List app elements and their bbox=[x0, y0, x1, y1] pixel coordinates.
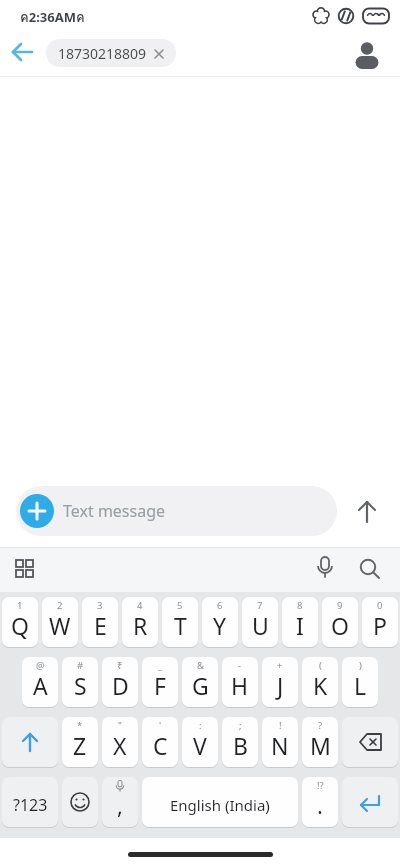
staticText: A bbox=[33, 670, 48, 701]
staticText: 2 bbox=[57, 599, 63, 612]
staticText: R bbox=[133, 610, 148, 641]
staticText: B bbox=[233, 730, 248, 761]
staticText: I bbox=[296, 610, 304, 641]
staticText: ) bbox=[359, 659, 362, 672]
staticText: English (India) bbox=[170, 795, 270, 815]
staticText: X bbox=[113, 730, 127, 761]
staticText: 6 bbox=[217, 599, 223, 612]
staticText: W bbox=[49, 610, 71, 641]
staticText: ' bbox=[159, 719, 162, 732]
staticText: 18730218809 bbox=[58, 44, 147, 63]
staticText: - bbox=[238, 659, 242, 672]
staticText: 7 bbox=[257, 599, 263, 612]
staticText: Y bbox=[213, 610, 227, 641]
staticText: * bbox=[77, 719, 83, 732]
staticText: 0 bbox=[377, 599, 383, 612]
staticText: & bbox=[197, 659, 204, 672]
staticText: !? bbox=[317, 779, 324, 792]
staticText: ?123 bbox=[13, 794, 48, 816]
staticText: , bbox=[117, 790, 123, 820]
staticText: S bbox=[74, 670, 87, 701]
staticText: # bbox=[77, 659, 84, 672]
staticText: ( bbox=[319, 659, 322, 672]
staticText: Text message bbox=[63, 500, 166, 522]
staticText: @ bbox=[36, 659, 45, 672]
staticText: L bbox=[354, 670, 367, 701]
staticText: F bbox=[154, 670, 166, 701]
staticText: Q bbox=[11, 610, 29, 641]
staticText: U bbox=[252, 610, 269, 641]
staticText: N bbox=[271, 730, 289, 761]
staticText: _ bbox=[158, 659, 163, 672]
staticText: O bbox=[331, 610, 349, 641]
staticText: C bbox=[153, 730, 168, 761]
staticText: ค2:36AMค bbox=[20, 7, 85, 28]
staticText: J bbox=[277, 670, 284, 701]
staticText: K bbox=[313, 670, 328, 701]
staticText: . bbox=[317, 790, 323, 820]
staticText: 5 bbox=[177, 599, 183, 612]
staticText: Z bbox=[73, 730, 87, 761]
staticText: 3 bbox=[97, 599, 103, 612]
staticText: ? bbox=[318, 719, 323, 732]
staticText: H bbox=[231, 670, 249, 701]
staticText: T bbox=[174, 610, 187, 641]
staticText: G bbox=[192, 670, 209, 701]
staticText: M bbox=[310, 730, 331, 761]
staticText: 9 bbox=[337, 599, 343, 612]
staticText: : bbox=[199, 719, 202, 732]
staticText: 1 bbox=[17, 599, 23, 612]
staticText: 8 bbox=[297, 599, 303, 612]
staticText: E bbox=[94, 610, 107, 641]
staticText: + bbox=[277, 659, 283, 672]
staticText: ₹ bbox=[117, 659, 123, 672]
staticText: " bbox=[118, 719, 122, 732]
staticText: V bbox=[193, 730, 207, 761]
staticText: 4 bbox=[137, 599, 143, 612]
staticText: P bbox=[373, 610, 387, 641]
staticText: ! bbox=[279, 719, 282, 732]
staticText: D bbox=[112, 670, 129, 701]
staticText: ; bbox=[239, 719, 242, 732]
